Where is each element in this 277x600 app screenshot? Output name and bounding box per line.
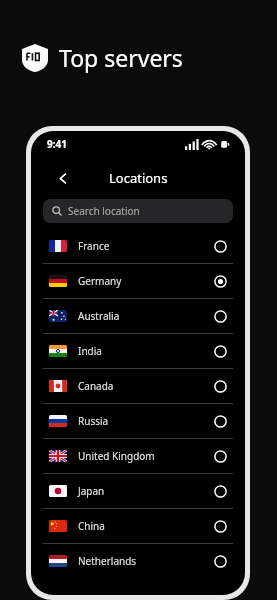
- staticText: Australia: [78, 309, 120, 323]
- staticText: Top servers: [59, 42, 183, 73]
- staticText: China: [78, 519, 105, 533]
- button[interactable]: United Kingdom: [31, 439, 245, 473]
- button[interactable]: Germany: [31, 264, 245, 298]
- staticText: Germany: [78, 274, 122, 288]
- button[interactable]: France: [31, 229, 245, 263]
- button[interactable]: India: [31, 334, 245, 368]
- button[interactable]: China: [31, 509, 245, 543]
- button[interactable]: Japan: [31, 474, 245, 508]
- staticText: India: [78, 344, 102, 358]
- button[interactable]: Netherlands: [31, 544, 245, 578]
- button[interactable]: Australia: [31, 299, 245, 333]
- staticText: Japan: [78, 484, 105, 498]
- button[interactable]: Canada: [31, 369, 245, 403]
- staticText: France: [78, 239, 110, 253]
- staticText: Netherlands: [78, 554, 137, 568]
- button[interactable]: Russia: [31, 404, 245, 438]
- staticText: United Kingdom: [78, 449, 155, 463]
- staticText: 9:41: [47, 137, 67, 151]
- staticText: Canada: [78, 379, 114, 393]
- staticText: Locations: [109, 169, 168, 187]
- button[interactable]: Back: [49, 164, 77, 192]
- staticText: Russia: [78, 414, 109, 428]
- staticText: Search location: [68, 204, 140, 218]
- button[interactable]: Search location: [43, 199, 233, 223]
